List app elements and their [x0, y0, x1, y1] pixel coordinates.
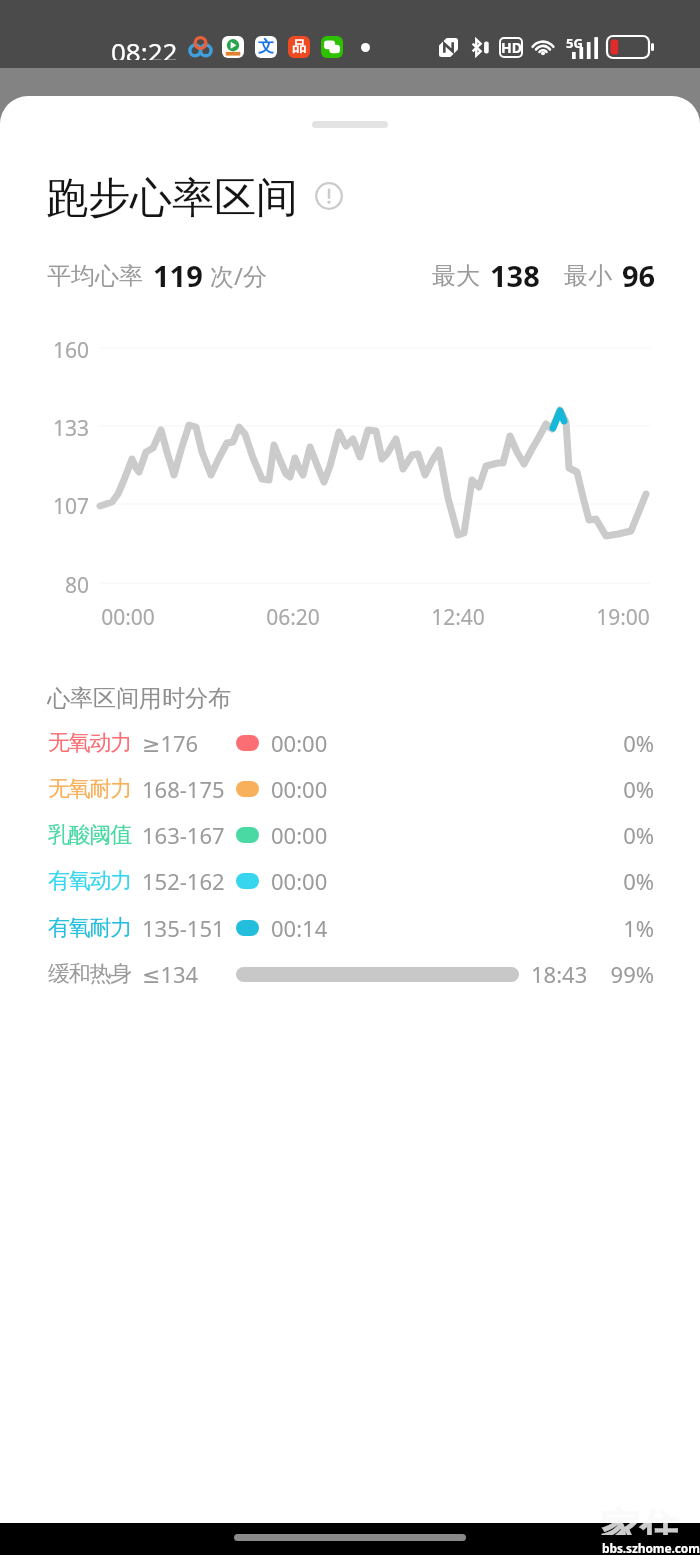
button[interactable]: 收起面板	[280, 96, 420, 130]
staticText: 最小	[564, 261, 612, 291]
staticText: HD	[501, 38, 522, 57]
staticText: 无氧耐力	[48, 775, 132, 803]
staticText: 18:43	[531, 959, 588, 989]
staticText: 138	[490, 256, 540, 295]
staticText: 152-162	[142, 866, 225, 896]
staticText: 0%	[554, 820, 654, 850]
staticText: 00:14	[271, 913, 328, 943]
staticText: 心率区间用时分布	[47, 684, 231, 713]
staticText: 跑步心率区间	[46, 172, 298, 220]
staticText: 有氧耐力	[48, 914, 132, 942]
staticText: 0%	[554, 774, 654, 804]
staticText: bbs.szhome.com	[602, 1540, 700, 1555]
staticText: 80	[18, 571, 89, 600]
staticText: 168-175	[142, 774, 225, 804]
staticText: 135-151	[142, 913, 225, 943]
staticText: 次/分	[210, 259, 267, 292]
staticText: 08:22	[111, 34, 178, 60]
staticText: 133	[18, 414, 89, 443]
button[interactable]: 缓和热身	[0, 951, 700, 997]
staticText: 0%	[554, 866, 654, 896]
staticText: ≥176	[142, 728, 199, 758]
staticText: 1%	[554, 913, 654, 943]
staticText: 00:00	[83, 603, 173, 632]
button[interactable]: 无氧动力	[0, 720, 700, 766]
staticText: 平均心率	[47, 261, 143, 291]
staticText: 00:00	[271, 820, 328, 850]
staticText: 00:00	[271, 774, 328, 804]
staticText: 19:00	[578, 603, 668, 632]
staticText: 最大	[432, 261, 480, 291]
staticText: ≤134	[142, 959, 199, 989]
staticText: 无氧动力	[48, 729, 132, 757]
staticText: 0%	[554, 728, 654, 758]
staticText: 96	[622, 256, 656, 295]
staticText: 家住	[600, 1503, 680, 1535]
staticText: 品	[292, 38, 306, 56]
staticText: 99%	[554, 959, 654, 989]
staticText: 160	[18, 336, 89, 365]
staticText: 163-167	[142, 820, 225, 850]
button[interactable]: 有氧耐力	[0, 905, 700, 951]
staticText: 缓和热身	[48, 960, 132, 988]
staticText: 119	[153, 256, 203, 295]
staticText: 有氧动力	[48, 867, 132, 895]
staticText: 107	[18, 492, 89, 521]
staticText: 文	[258, 37, 274, 57]
staticText: 00:00	[271, 728, 328, 758]
staticText: 乳酸阈值	[48, 821, 132, 849]
button[interactable]: 乳酸阈值	[0, 812, 700, 858]
staticText: 5G	[566, 34, 583, 52]
button[interactable]: 心率区间说明	[312, 179, 346, 213]
staticText: 06:20	[248, 603, 338, 632]
button[interactable]: 主屏幕	[234, 1527, 466, 1547]
button[interactable]: 有氧动力	[0, 858, 700, 904]
staticText: 00:00	[271, 866, 328, 896]
staticText: 家住	[600, 1503, 680, 1553]
staticText: 12:40	[413, 603, 503, 632]
button[interactable]: 无氧耐力	[0, 766, 700, 812]
